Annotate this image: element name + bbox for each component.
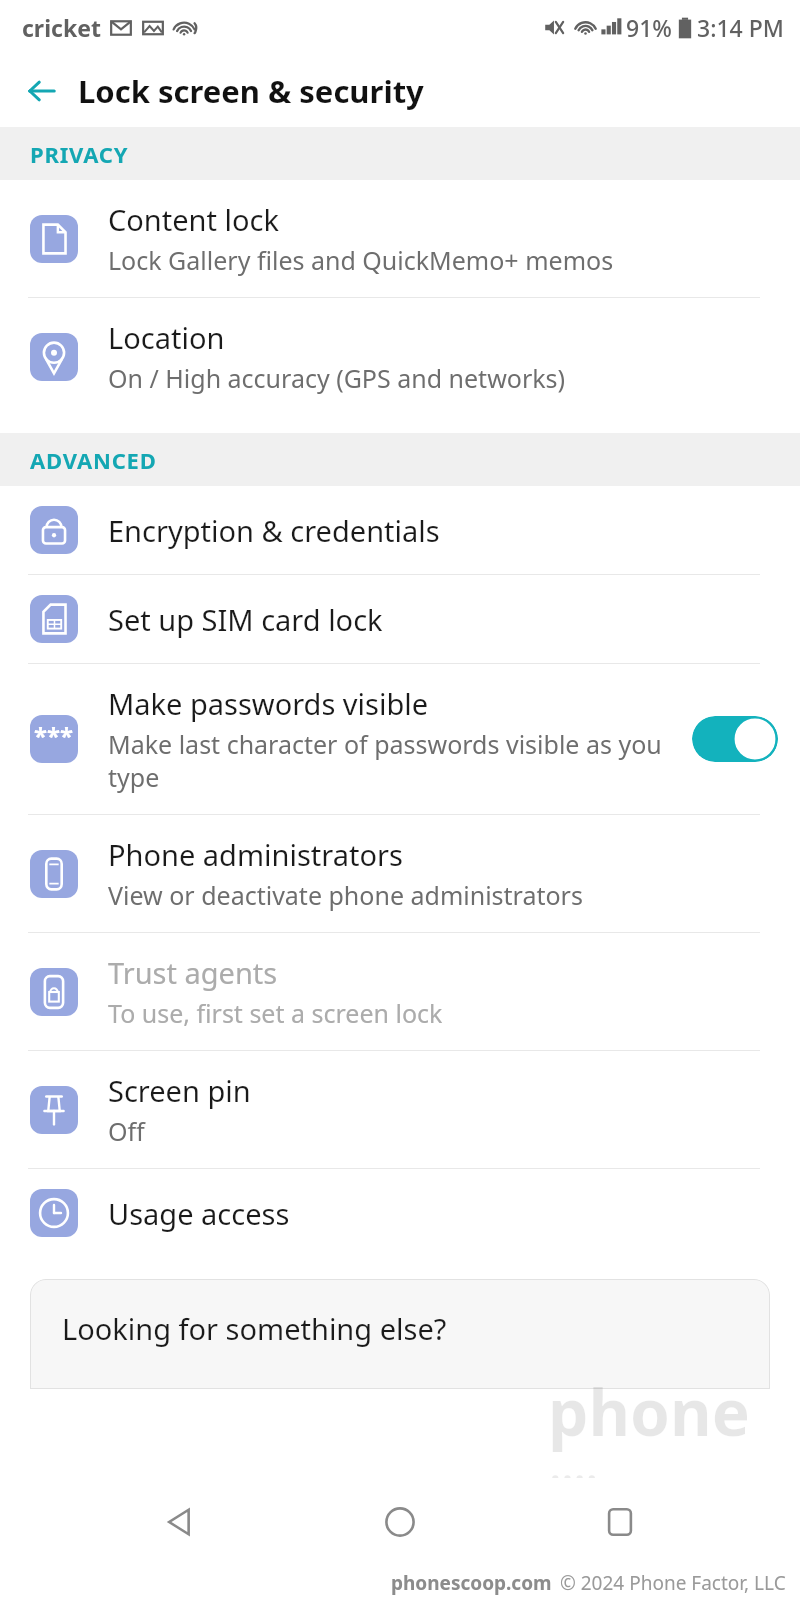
staticText: Location	[108, 318, 225, 357]
staticText: scoop	[604, 1455, 790, 1542]
staticText: Looking for something else?	[62, 1309, 447, 1348]
button[interactable]: Back	[140, 1482, 220, 1562]
staticText: Phone administrators	[108, 835, 403, 874]
staticText: Set up SIM card lock	[108, 600, 383, 639]
button[interactable]: Usage access	[0, 1169, 800, 1257]
staticText: phone	[548, 1368, 750, 1455]
staticText: phonescoop.com	[391, 1570, 552, 1596]
staticText: View or deactivate phone administrators	[108, 878, 583, 912]
button[interactable]: ***	[0, 664, 800, 814]
staticText: PRIVACY	[30, 139, 129, 169]
staticText: Lock Gallery files and QuickMemo+ memos	[108, 243, 614, 277]
button[interactable]: Recent apps	[580, 1482, 660, 1562]
staticText: Content lock	[108, 200, 279, 239]
button[interactable]: Make passwords visible toggle	[692, 716, 778, 762]
staticText: Screen pin	[108, 1071, 251, 1110]
button[interactable]: Back	[14, 63, 70, 119]
staticText: Usage access	[108, 1194, 290, 1233]
button[interactable]: Trust agents	[0, 933, 800, 1050]
staticText: On / High accuracy (GPS and networks)	[108, 361, 566, 395]
staticText: Encryption & credentials	[108, 511, 440, 550]
button[interactable]: Looking for something else?	[30, 1279, 770, 1389]
staticText: Off	[108, 1114, 145, 1148]
staticText: © 2024 Phone Factor, LLC	[560, 1570, 786, 1596]
staticText: ADVANCED	[30, 445, 157, 475]
staticText: ***	[34, 719, 74, 752]
staticText: Lock screen & security	[78, 70, 424, 112]
button[interactable]: Home	[360, 1482, 440, 1562]
button[interactable]: Encryption & credentials	[0, 486, 800, 574]
button[interactable]: Location	[0, 298, 800, 415]
button[interactable]: Set up SIM card lock	[0, 575, 800, 663]
staticText: 3:14 PM	[697, 12, 784, 43]
staticText: Make passwords visible	[108, 684, 429, 723]
button[interactable]: Content lock	[0, 180, 800, 297]
staticText: 91%	[626, 12, 672, 43]
staticText: To use, first set a screen lock	[108, 996, 443, 1030]
staticText: Trust agents	[108, 953, 278, 992]
staticText: Make last character of passwords visible…	[108, 727, 682, 794]
staticText: cricket	[22, 12, 101, 43]
button[interactable]: Screen pin	[0, 1051, 800, 1168]
button[interactable]: Phone administrators	[0, 815, 800, 932]
